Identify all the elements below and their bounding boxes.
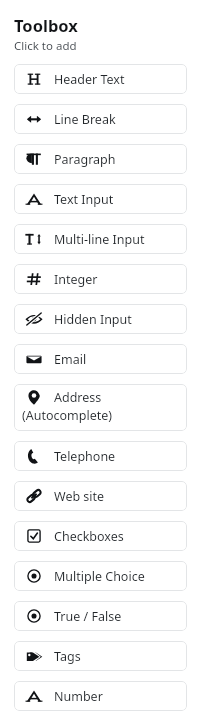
button[interactable]: Line Break [14,104,187,134]
staticText: Toolbox [14,14,78,36]
staticText: Checkboxes [54,528,124,545]
other: Multi-line Input [25,231,43,247]
button[interactable]: Number [14,681,187,711]
button[interactable]: Hidden Input [14,304,187,334]
button[interactable]: Header Text [14,64,187,94]
staticText: Telephone [54,448,116,465]
other: Checkboxes [25,528,43,544]
button[interactable]: Multi-line Input [14,224,187,254]
staticText: Tags [54,648,81,665]
staticText: Text Input [54,191,114,208]
button[interactable]: Multiple Choice [14,561,187,591]
button[interactable]: Email [14,344,187,374]
other: Line Break [25,111,43,127]
button[interactable]: Integer [14,264,187,294]
staticText: True / False [54,608,122,625]
button[interactable]: Tags [14,641,187,671]
other: Telephone [25,448,43,464]
other: Text Input [25,191,43,207]
button[interactable]: True / False [14,601,187,631]
button[interactable]: Text Input [14,184,187,214]
staticText: Multiple Choice [54,568,145,585]
other: Multiple Choice [25,568,43,584]
other: Hidden Input [25,311,43,327]
other: Integer [25,271,43,287]
staticText: Paragraph [54,151,116,168]
staticText: Web site [54,488,105,505]
other: Tags [25,648,43,664]
button[interactable]: Checkboxes [14,521,187,551]
staticText: Hidden Input [54,311,132,328]
other: Number [25,688,43,704]
other: Email [25,351,43,367]
button[interactable]: Address (Autocomplete) [14,384,187,431]
button[interactable]: Paragraph [14,144,187,174]
staticText: Click to add [14,38,77,54]
staticText: Multi-line Input [54,231,145,248]
staticText: Email [54,351,87,368]
button[interactable]: Web site [14,481,187,511]
other: Paragraph [25,151,43,167]
staticText: (Autocomplete) [22,407,113,424]
staticText: Line Break [54,111,116,128]
other: Header Text [25,71,43,87]
other: Web site [25,488,43,504]
staticText: Address [54,389,102,406]
staticText: Integer [54,271,98,288]
button[interactable]: Telephone [14,441,187,471]
other: Address (Autocomplete) [25,390,43,406]
staticText: Header Text [54,71,125,88]
staticText: Number [54,688,103,705]
other: True / False [25,608,43,624]
